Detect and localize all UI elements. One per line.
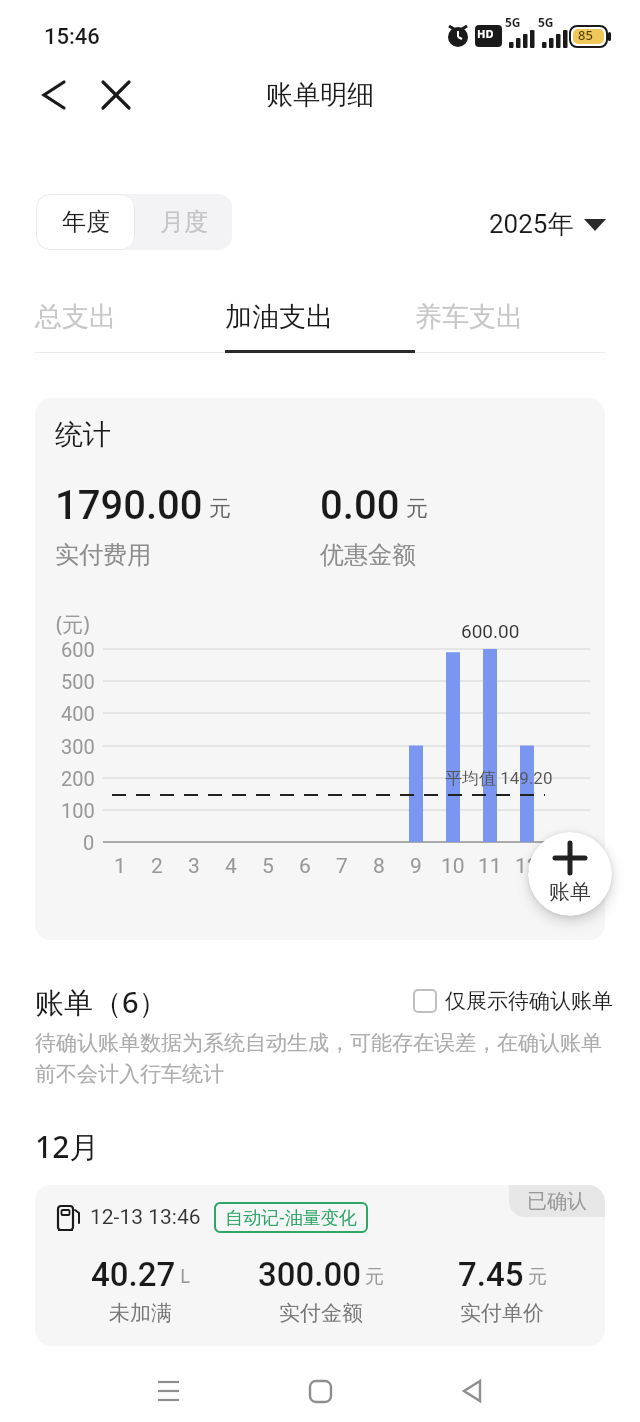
staticText: 账单 [549, 879, 591, 905]
staticText: 实付费用 [55, 540, 151, 570]
staticText: HD [477, 26, 494, 41]
button[interactable] [94, 76, 138, 116]
staticText: 40.27 [91, 1255, 176, 1294]
staticText: 实付单价 [460, 1300, 544, 1326]
staticText: 已确认 [527, 1189, 587, 1214]
staticText: 0.00 [320, 482, 400, 529]
staticText: 12-13 13:46 [90, 1205, 201, 1230]
staticText: 总支出 [35, 300, 116, 334]
staticText: 待确认账单数据为系统自动生成，可能存在误差，在确认账单前不会计入行车统计 [35, 1030, 610, 1087]
staticText: 9 [410, 854, 422, 879]
staticText: 加油支出 [225, 300, 333, 334]
staticText: 15:46 [44, 24, 100, 50]
staticText: 11 [478, 854, 502, 879]
staticText: 月度 [160, 207, 208, 237]
staticText: 7 [336, 854, 348, 879]
button[interactable]: 总支出 [35, 300, 225, 356]
staticText: 账单明细 [266, 78, 374, 112]
staticText: L [180, 1263, 190, 1289]
staticText: 5G [538, 14, 554, 30]
staticText: 3 [188, 854, 200, 879]
staticText: 自动记-油量变化 [225, 1205, 357, 1230]
button[interactable]: 加油支出 [225, 300, 415, 356]
button[interactable] [442, 1366, 502, 1416]
staticText: 1 [114, 854, 126, 879]
staticText: 仅展示待确认账单 [445, 988, 613, 1014]
staticText: 12月 [35, 1126, 100, 1167]
button[interactable]: 已确认 [35, 1185, 605, 1346]
staticText: 未加满 [109, 1300, 172, 1326]
staticText: 元 [528, 1265, 547, 1289]
button[interactable]: 账单 [528, 832, 612, 916]
staticText: 平均值 149.20 [445, 768, 553, 789]
staticText: 12 [515, 854, 539, 879]
staticText: 500 [61, 670, 95, 693]
staticText: 元 [406, 495, 428, 523]
button[interactable]: 年度 [36, 194, 135, 250]
staticText: 优惠金额 [320, 540, 416, 570]
staticText: 账单（6） [35, 982, 168, 1022]
staticText: 200 [61, 767, 95, 790]
staticText: 实付金额 [279, 1300, 363, 1326]
button[interactable] [138, 1366, 198, 1416]
staticText: 8 [373, 854, 385, 879]
staticText: (元) [56, 610, 90, 639]
button[interactable] [32, 76, 76, 116]
button[interactable]: 仅展示待确认账单 [413, 988, 613, 1014]
staticText: 10 [441, 854, 465, 879]
button[interactable]: 2025年 [489, 208, 607, 241]
staticText: 400 [61, 702, 95, 725]
staticText: 5G [505, 14, 521, 30]
staticText: 年度 [62, 207, 110, 237]
staticText: 养车支出 [415, 300, 523, 334]
staticText: 85 [578, 26, 593, 44]
staticText: 300 [61, 735, 95, 758]
staticText: 0 [83, 831, 95, 854]
button[interactable]: 养车支出 [415, 300, 605, 356]
staticText: 2 [151, 854, 163, 879]
staticText: 6 [299, 854, 311, 879]
staticText: 100 [61, 799, 95, 822]
staticText: 1790.00 [55, 482, 203, 529]
staticText: 2025年 [489, 208, 574, 241]
button[interactable] [290, 1366, 350, 1416]
button[interactable]: 月度 [135, 194, 232, 250]
staticText: 7.45 [458, 1255, 524, 1294]
staticText: 5 [262, 854, 274, 879]
staticText: 600.00 [461, 620, 520, 642]
staticText: 600 [61, 638, 95, 661]
staticText: 元 [209, 495, 231, 523]
staticText: 元 [365, 1265, 384, 1289]
staticText: 4 [225, 854, 237, 879]
staticText: 300.00 [258, 1255, 361, 1294]
staticText: 统计 [55, 417, 111, 452]
